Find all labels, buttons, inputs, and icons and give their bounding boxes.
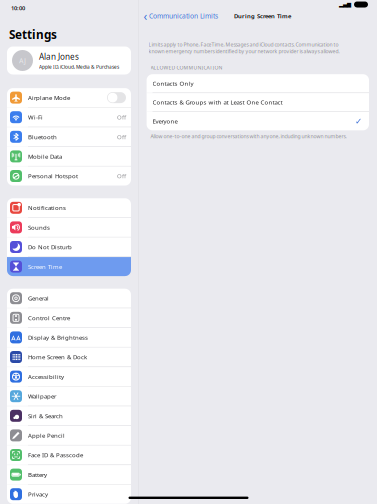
button[interactable]: Mobile Data <box>7 147 131 166</box>
button[interactable]: Contacts Only <box>147 74 369 93</box>
staticText: Apple Pencil <box>28 431 65 439</box>
staticText: Screen Time <box>28 262 62 271</box>
button[interactable]: Bluetooth <box>7 127 131 146</box>
button[interactable]: Control Centre <box>7 308 131 327</box>
staticText: Airplane Mode <box>28 93 70 102</box>
button[interactable]: Contacts & Groups with at Least One Cont… <box>147 93 369 111</box>
staticText: 10:00 <box>11 4 25 12</box>
staticText: Personal Hotspot <box>28 172 78 180</box>
button[interactable]: Everyone <box>147 112 369 130</box>
staticText: Control Centre <box>28 314 70 322</box>
button[interactable]: Siri & Search <box>7 406 131 425</box>
staticText: Off <box>117 172 126 180</box>
button[interactable]: Battery <box>7 465 131 484</box>
button[interactable]: Sounds <box>7 218 131 237</box>
staticText: Do Not Disturb <box>28 243 72 251</box>
staticText: Allow one-to-one and group conversations… <box>151 133 347 140</box>
button[interactable]: ‹ <box>144 8 222 24</box>
button[interactable]: Do Not Disturb <box>7 237 131 257</box>
button[interactable]: Airplane Mode <box>7 88 131 107</box>
button[interactable]: Personal Hotspot <box>7 166 131 186</box>
staticText: Privacy <box>28 490 48 498</box>
staticText: Face ID & Passcode <box>28 451 83 459</box>
staticText: Home Screen & Dock <box>28 353 87 361</box>
staticText: Wi-Fi <box>28 113 43 121</box>
staticText: Notifications <box>28 204 66 212</box>
button[interactable]: Display & Brightness <box>7 328 131 347</box>
staticText: Sounds <box>28 223 50 231</box>
staticText: Contacts Only <box>153 79 194 87</box>
staticText: Battery <box>28 470 47 479</box>
button[interactable]: Wallpaper <box>7 387 131 406</box>
staticText: ‹ <box>144 8 148 24</box>
button[interactable]: Face ID & Passcode <box>7 445 131 465</box>
staticText: Wallpaper <box>28 392 56 400</box>
staticText: Bluetooth <box>28 133 57 141</box>
button[interactable]: Wi-Fi <box>7 108 131 127</box>
staticText: Communication Limits <box>149 11 218 21</box>
button[interactable]: Privacy <box>7 485 131 504</box>
staticText: General <box>28 294 49 302</box>
button[interactable]: Screen Time <box>7 257 131 276</box>
button[interactable]: AJ <box>7 46 131 74</box>
staticText: Everyone <box>153 117 178 125</box>
staticText: Off <box>117 133 126 141</box>
button[interactable]: General <box>7 289 131 308</box>
staticText: Mobile Data <box>28 152 62 160</box>
staticText: During Screen Time <box>234 12 291 20</box>
staticText: Siri & Search <box>28 412 63 420</box>
staticText: Display & Brightness <box>28 333 88 341</box>
button[interactable]: Apple Pencil <box>7 426 131 445</box>
staticText: ✓ <box>355 116 362 126</box>
staticText: Off <box>117 113 126 121</box>
staticText: Limits apply to Phone, FaceTime, Message… <box>149 41 340 55</box>
staticText: Alan Jones <box>39 51 79 62</box>
button[interactable]: Home Screen & Dock <box>7 347 131 367</box>
staticText: Apple ID, iCloud, Media & Purchases <box>39 63 119 70</box>
staticText: Settings <box>9 26 57 42</box>
staticText: Contacts & Groups with at Least One Cont… <box>153 98 283 106</box>
staticText: ALLOWED COMMUNICATION <box>151 64 223 71</box>
staticText: ▂▄▆ <box>339 1 351 8</box>
button[interactable]: Accessibility <box>7 367 131 386</box>
staticText: AJ <box>19 56 26 65</box>
button[interactable]: Notifications <box>7 198 131 217</box>
staticText: Accessibility <box>28 372 64 381</box>
